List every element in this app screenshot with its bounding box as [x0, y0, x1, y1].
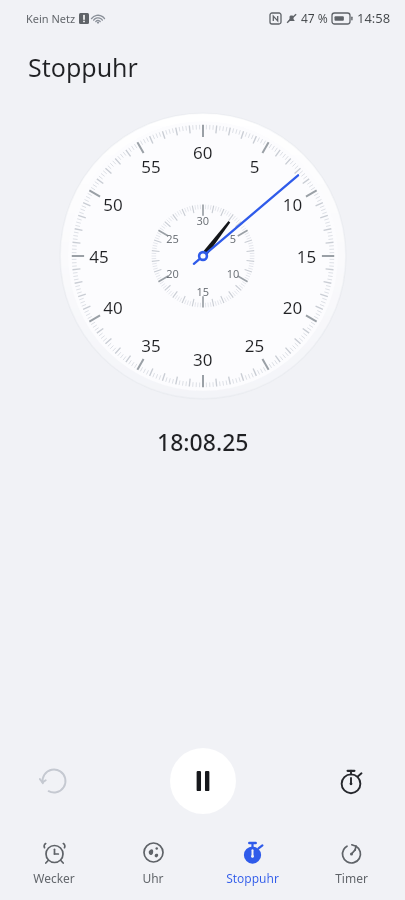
staticText: 14:58 [357, 9, 391, 27]
staticText: Stoppuhr [226, 870, 279, 886]
button[interactable]: Timer [306, 836, 396, 890]
staticText: 18:08.25 [157, 426, 249, 457]
button[interactable]: Uhr [108, 836, 198, 890]
staticText: Timer [335, 870, 368, 886]
staticText: Stoppuhr [28, 50, 138, 84]
staticText: Wecker [33, 870, 75, 886]
staticText: 47 % [301, 10, 328, 26]
staticText: Uhr [142, 870, 164, 886]
button[interactable]: Wecker [9, 836, 99, 890]
button[interactable]: Stoppuhr [207, 836, 297, 890]
staticText: Kein Netz [26, 11, 76, 26]
button[interactable]: Runde [323, 753, 379, 809]
button[interactable]: Zurücksetzen [26, 753, 82, 809]
button[interactable]: Pause [170, 748, 236, 814]
